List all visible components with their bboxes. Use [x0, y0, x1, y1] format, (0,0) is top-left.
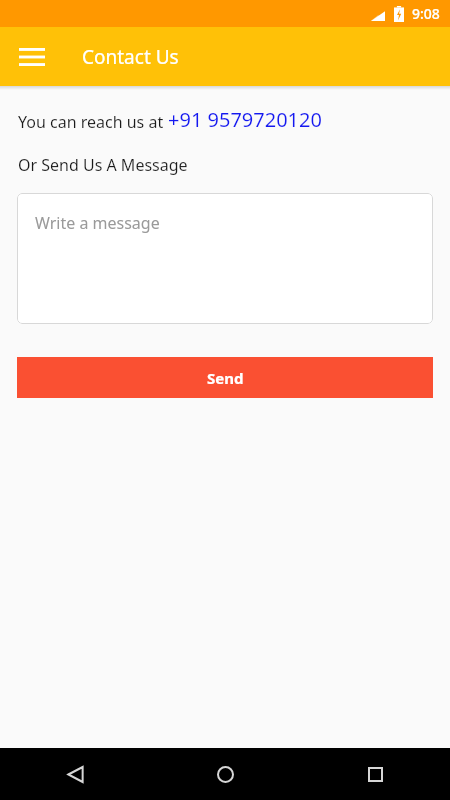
button[interactable]: Open navigation menu: [8, 33, 56, 81]
staticText: Contact Us: [82, 44, 179, 70]
button[interactable]: Back: [0, 748, 150, 800]
button[interactable]: Recent apps: [300, 748, 450, 800]
staticText: +91 9579720120: [168, 106, 322, 133]
staticText: Send: [207, 368, 244, 388]
staticText: You can reach us at: [18, 111, 168, 133]
button[interactable]: Home: [150, 748, 300, 800]
button[interactable]: Send: [17, 357, 433, 398]
staticText: Write a message: [35, 212, 160, 234]
staticText: Or Send Us A Message: [18, 154, 188, 176]
button[interactable]: You can reach us at: [18, 106, 322, 133]
button[interactable]: Write a message: [17, 193, 433, 324]
staticText: 9:08: [412, 4, 440, 23]
